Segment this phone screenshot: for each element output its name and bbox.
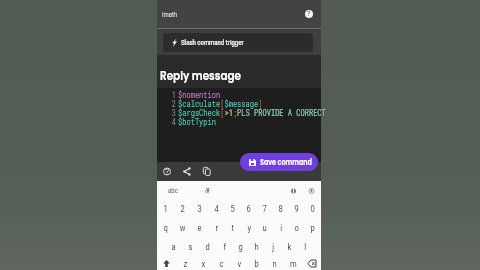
button[interactable]: w xyxy=(174,218,191,237)
staticText: 9 xyxy=(295,203,299,214)
staticText: y xyxy=(247,222,251,233)
staticText: 3 xyxy=(171,107,176,119)
button[interactable]: 3 xyxy=(191,199,208,218)
button[interactable]: d xyxy=(199,237,216,256)
staticText: m xyxy=(290,258,297,269)
staticText: 0 xyxy=(311,203,315,214)
button[interactable]: 7 xyxy=(257,199,273,218)
staticText: x xyxy=(201,258,205,269)
button[interactable]: 1 xyxy=(157,199,174,218)
button[interactable]: Shift xyxy=(157,256,176,270)
staticText: n xyxy=(273,258,277,269)
button[interactable]: f xyxy=(216,237,233,256)
staticText: Slash command trigger xyxy=(181,38,244,47)
button[interactable]: v xyxy=(230,256,248,270)
staticText: r xyxy=(215,222,219,233)
button[interactable]: 0 xyxy=(305,199,321,218)
staticText: $calculate[$message] xyxy=(178,98,263,110)
staticText: g xyxy=(239,241,243,252)
staticText: 8 xyxy=(279,203,283,214)
staticText: p xyxy=(311,222,315,233)
staticText: 3 xyxy=(198,203,202,214)
button[interactable]: k xyxy=(281,237,297,256)
button[interactable]: e xyxy=(191,218,208,237)
button[interactable]: 4 xyxy=(208,199,225,218)
button[interactable]: p xyxy=(305,218,321,237)
staticText: 1 xyxy=(171,89,176,101)
button[interactable]: i xyxy=(273,218,289,237)
button[interactable]: abc xyxy=(164,183,185,198)
button[interactable]: 2 xyxy=(174,199,191,218)
button[interactable]: q xyxy=(157,218,174,237)
staticText: 4 xyxy=(215,203,219,214)
button[interactable]: b xyxy=(248,256,266,270)
button[interactable]: n xyxy=(266,256,284,270)
button[interactable]: 5 xyxy=(225,199,241,218)
staticText: 5 xyxy=(231,203,235,214)
staticText: 1 xyxy=(164,203,168,214)
button[interactable]: Copy xyxy=(197,162,217,181)
staticText: 4 xyxy=(171,116,176,128)
staticText: Save command xyxy=(260,157,312,168)
button[interactable]: Voice input xyxy=(305,184,318,197)
button[interactable]: t xyxy=(225,218,241,237)
staticText: o xyxy=(295,222,299,233)
button[interactable]: x xyxy=(194,256,212,270)
staticText: f xyxy=(223,241,227,252)
button[interactable]: m xyxy=(284,256,302,270)
button[interactable]: अ xyxy=(201,182,215,198)
button[interactable]: g xyxy=(233,237,249,256)
button[interactable]: 6 xyxy=(241,199,257,218)
staticText: i xyxy=(280,222,283,233)
button[interactable]: Help xyxy=(157,162,177,181)
button[interactable]: r xyxy=(208,218,225,237)
button[interactable]: Clipboard xyxy=(287,184,300,197)
staticText: 2 xyxy=(181,203,185,214)
staticText: w xyxy=(180,222,186,233)
staticText: $botTypin xyxy=(178,116,216,128)
button[interactable]: h xyxy=(249,237,265,256)
staticText: c xyxy=(219,258,223,269)
staticText: अ xyxy=(205,185,210,195)
staticText: u xyxy=(263,222,267,233)
button[interactable]: c xyxy=(212,256,230,270)
button[interactable]: !math xyxy=(157,0,321,28)
button[interactable]: o xyxy=(289,218,305,237)
staticText: 6 xyxy=(247,203,251,214)
staticText: s xyxy=(188,241,192,252)
button[interactable]: u xyxy=(257,218,273,237)
button[interactable]: Save command xyxy=(240,153,318,171)
staticText: e xyxy=(198,222,202,233)
staticText: j xyxy=(272,241,275,252)
staticText: 7 xyxy=(263,203,267,214)
button[interactable]: 8 xyxy=(273,199,289,218)
staticText: a xyxy=(172,241,176,252)
staticText: d xyxy=(206,241,210,252)
staticText: !math xyxy=(162,10,178,19)
button[interactable]: y xyxy=(241,218,257,237)
staticText: k xyxy=(287,241,291,252)
staticText: h xyxy=(255,241,259,252)
staticText: l xyxy=(304,241,307,252)
staticText: q xyxy=(164,222,168,233)
staticText: ? xyxy=(307,10,311,18)
staticText: $argsCheck[>1;PLS PROVIDE A CORRECT xyxy=(178,107,326,119)
button[interactable]: l xyxy=(297,237,313,256)
button[interactable]: Help xyxy=(305,10,313,18)
button[interactable]: Slash command trigger xyxy=(163,33,313,52)
staticText: 2 xyxy=(171,98,176,110)
staticText: z xyxy=(183,258,187,269)
button[interactable]: a xyxy=(165,237,182,256)
button[interactable]: 9 xyxy=(289,199,305,218)
button[interactable]: s xyxy=(182,237,199,256)
staticText: v xyxy=(237,258,241,269)
staticText: $nomention xyxy=(178,89,220,101)
button[interactable]: z xyxy=(176,256,194,270)
staticText: abc xyxy=(168,186,178,195)
staticText: b xyxy=(255,258,259,269)
button[interactable]: Share xyxy=(177,162,197,181)
staticText: t xyxy=(231,222,235,233)
button[interactable]: j xyxy=(265,237,281,256)
button[interactable]: Backspace xyxy=(302,256,321,270)
staticText: Reply message xyxy=(160,66,242,84)
